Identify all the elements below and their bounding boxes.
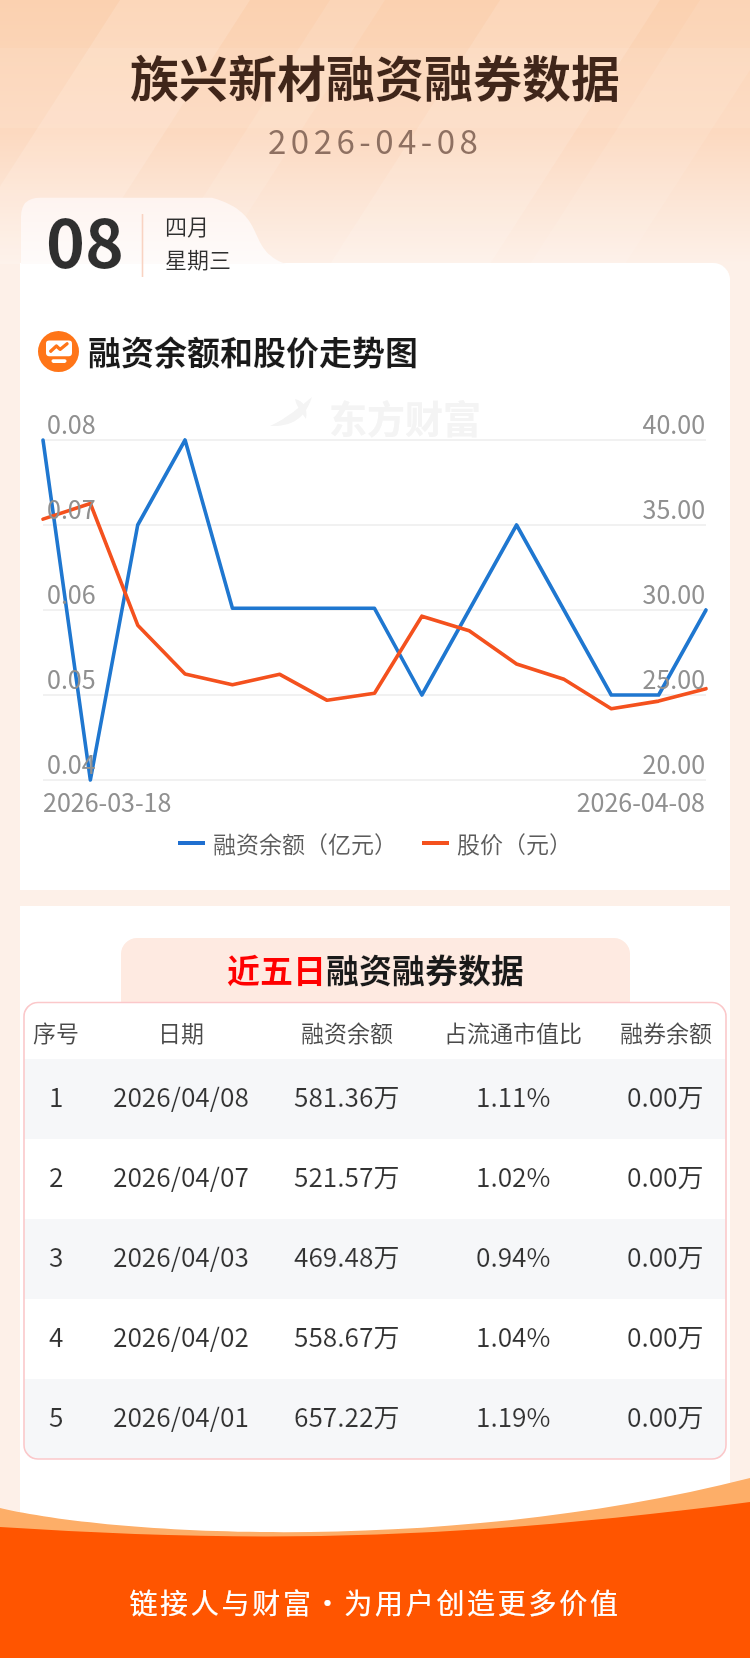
staticText: 东方财富 xyxy=(329,389,482,444)
staticText: 1 xyxy=(49,1077,64,1115)
staticText: 657.22万 xyxy=(294,1397,400,1435)
staticText: 20.00 xyxy=(560,745,705,781)
staticText: 2026/04/07 xyxy=(113,1157,249,1195)
staticText: 近五日 xyxy=(227,945,326,993)
staticText: 581.36万 xyxy=(294,1077,400,1115)
staticText: 0.00万 xyxy=(627,1397,704,1435)
staticText: 序号 xyxy=(33,1015,79,1048)
staticText: 四月 xyxy=(165,209,210,241)
staticText: 0.04 xyxy=(47,745,96,781)
staticText: 2026-04-08 xyxy=(268,116,483,164)
staticText: 1.19% xyxy=(476,1397,551,1435)
staticText: 日期 xyxy=(158,1015,204,1048)
staticText: 股价（元） xyxy=(457,826,572,859)
staticText: 0.94% xyxy=(476,1237,551,1275)
staticText: 0.07 xyxy=(47,490,96,526)
staticText: 2026/04/02 xyxy=(113,1317,249,1355)
button[interactable]: 3 xyxy=(24,1219,726,1299)
staticText: 星期三 xyxy=(165,242,232,274)
staticText: 2026/04/01 xyxy=(113,1397,249,1435)
staticText: 融资余额和股价走势图 xyxy=(88,327,418,375)
staticText: 0.00万 xyxy=(627,1077,704,1115)
staticText: 558.67万 xyxy=(294,1317,400,1355)
staticText: 1.04% xyxy=(476,1317,551,1355)
staticText: 融资融券数据 xyxy=(326,945,524,993)
staticText: 2026-04-08 xyxy=(560,783,705,819)
button[interactable]: 近五日 xyxy=(121,938,630,1003)
staticText: 2 xyxy=(49,1157,64,1195)
staticText: 08 xyxy=(46,191,124,287)
staticText: 0.08 xyxy=(47,405,96,441)
staticText: 融资余额（亿元） xyxy=(213,826,397,859)
staticText: 1.11% xyxy=(476,1077,551,1115)
button[interactable]: 5 xyxy=(24,1379,726,1459)
button[interactable]: 融资余额（亿元） xyxy=(178,826,397,859)
staticText: 0.00万 xyxy=(627,1237,704,1275)
staticText: 链接人与财富·为用户创造更多价值 xyxy=(0,1582,750,1623)
staticText: 占流通市值比 xyxy=(444,1015,582,1048)
staticText: 0.00万 xyxy=(627,1157,704,1195)
button[interactable]: 4 xyxy=(24,1299,726,1379)
staticText: 融券余额 xyxy=(620,1015,712,1048)
other: 走势图 xyxy=(38,331,79,372)
staticText: 4 xyxy=(49,1317,64,1355)
staticText: 2026/04/03 xyxy=(113,1237,249,1275)
staticText: 2026-03-18 xyxy=(43,783,172,819)
button[interactable]: 1 xyxy=(24,1059,726,1139)
staticText: 0.00万 xyxy=(627,1317,704,1355)
staticText: 25.00 xyxy=(560,660,705,696)
staticText: 东方财富 xyxy=(329,1217,482,1272)
staticText: 35.00 xyxy=(560,490,705,526)
staticText: 族兴新材融资融券数据 xyxy=(130,40,621,111)
staticText: 521.57万 xyxy=(294,1157,400,1195)
button[interactable]: 股价（元） xyxy=(422,826,572,859)
staticText: 3 xyxy=(49,1237,64,1275)
staticText: 1.02% xyxy=(476,1157,551,1195)
staticText: 融资余额 xyxy=(301,1015,393,1048)
staticText: 30.00 xyxy=(560,575,705,611)
staticText: 5 xyxy=(49,1397,64,1435)
staticText: 0.05 xyxy=(47,660,96,696)
button[interactable]: 2 xyxy=(24,1139,726,1219)
staticText: 0.06 xyxy=(47,575,96,611)
staticText: 2026/04/08 xyxy=(113,1077,249,1115)
staticText: 469.48万 xyxy=(294,1237,400,1275)
staticText: 40.00 xyxy=(560,405,705,441)
